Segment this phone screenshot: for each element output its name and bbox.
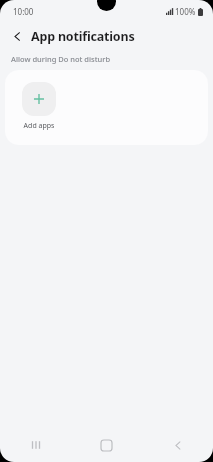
staticText: 100% xyxy=(175,6,196,17)
button[interactable]: Back xyxy=(142,428,213,462)
button[interactable]: Recent apps xyxy=(0,428,71,462)
button[interactable]: Back xyxy=(6,25,28,47)
button[interactable]: Home xyxy=(71,428,142,462)
staticText: Add apps xyxy=(17,121,61,131)
staticText: 10:00 xyxy=(13,6,34,17)
button[interactable]: Add apps xyxy=(17,82,61,131)
staticText: Allow during Do not disturb xyxy=(11,54,111,64)
staticText: App notifications xyxy=(31,28,135,45)
